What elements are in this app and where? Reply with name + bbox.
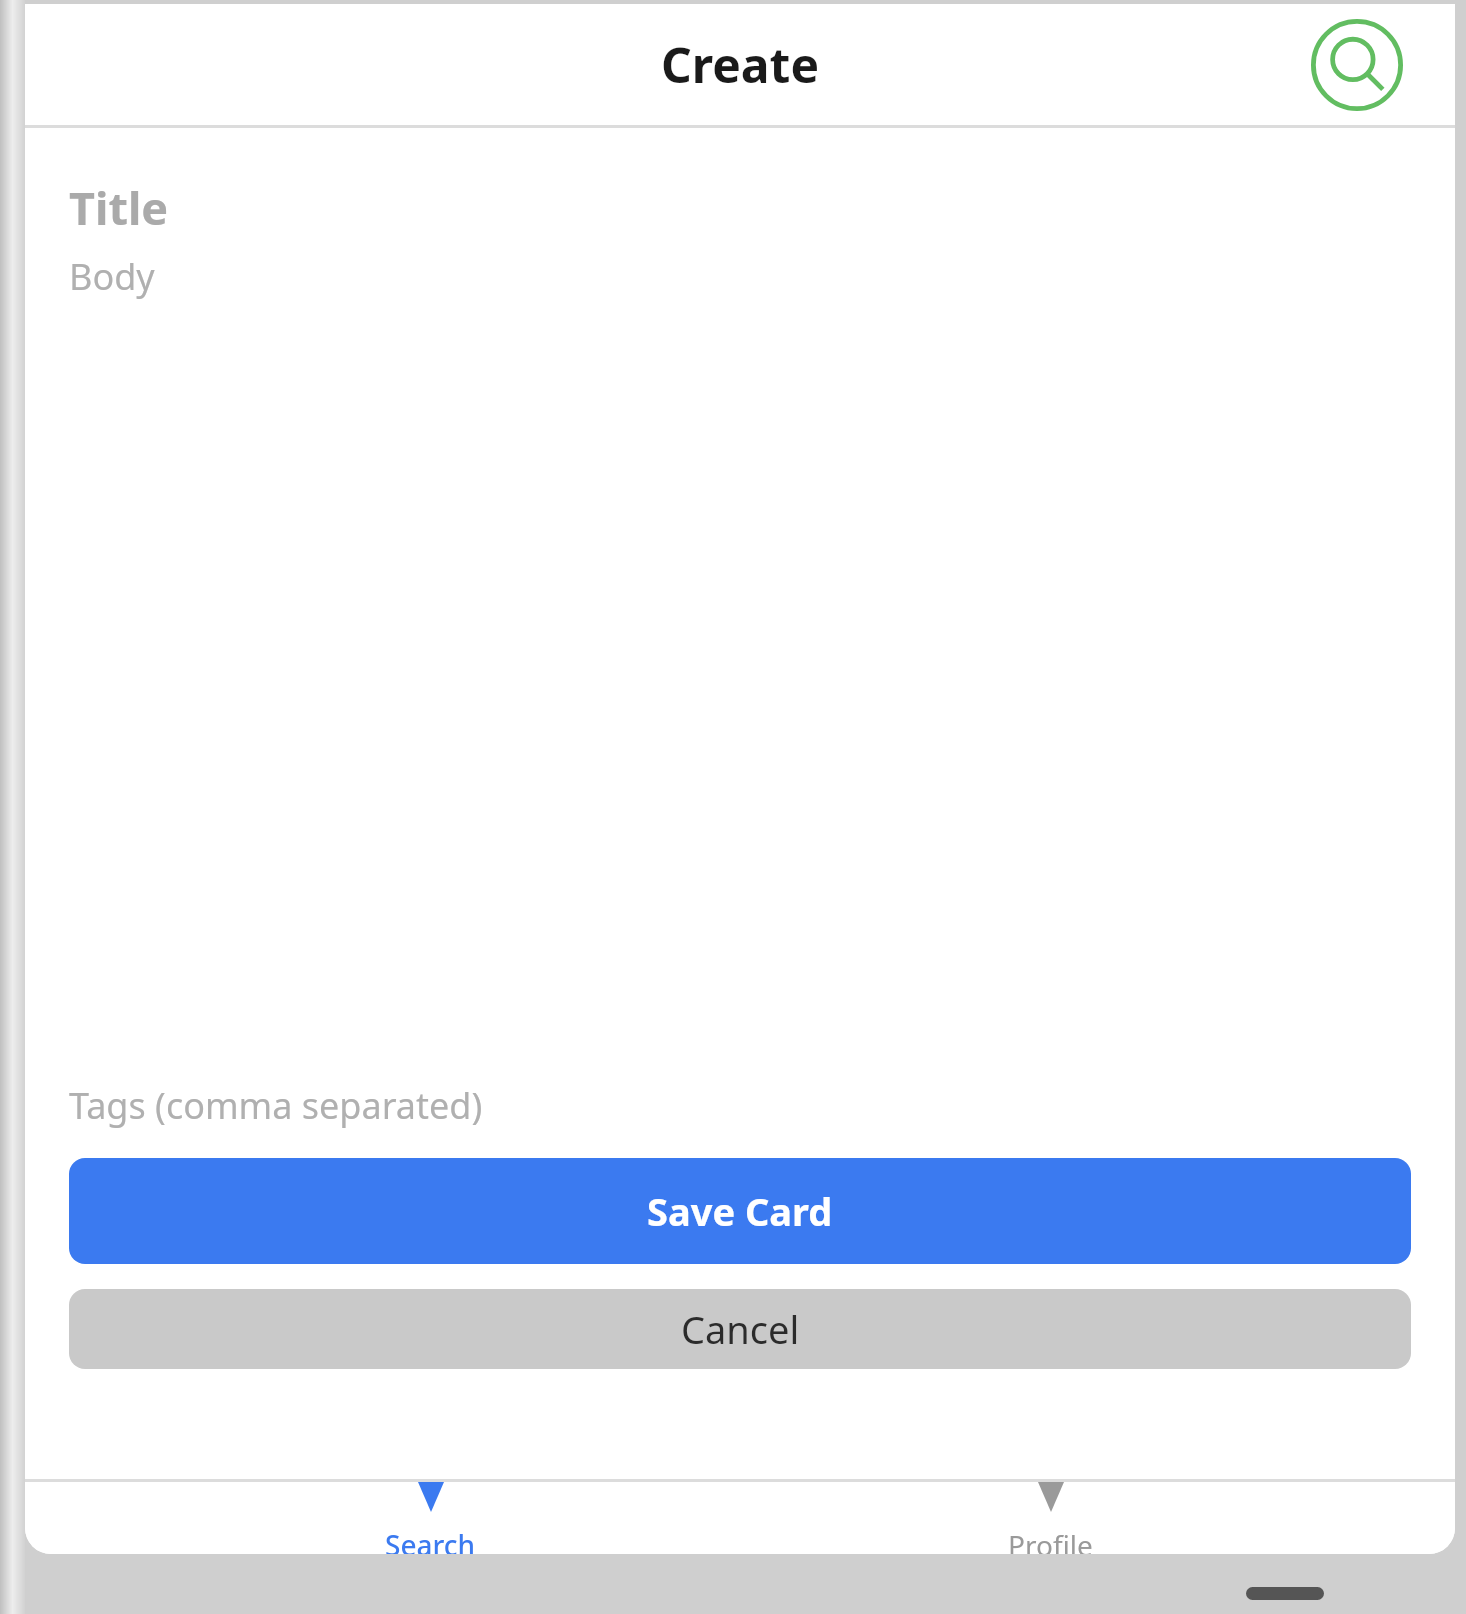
button[interactable]: Save Card [69,1158,1411,1264]
staticText: Search [385,1526,476,1554]
button[interactable]: Search [215,1482,645,1554]
staticText: Title [69,177,169,238]
staticText: Cancel [681,1303,800,1355]
staticText: Create [25,32,1455,97]
staticText: Tags (comma separated) [69,1081,483,1130]
button[interactable]: Tags (comma separated) [69,1070,1411,1140]
staticText: Body [69,252,155,301]
staticText: Profile [1008,1526,1093,1554]
button[interactable]: Title [69,176,1411,238]
button[interactable]: Profile [835,1482,1265,1554]
button[interactable]: Cancel [69,1289,1411,1369]
staticText: Save Card [647,1185,833,1237]
button[interactable]: Search [1311,19,1403,111]
